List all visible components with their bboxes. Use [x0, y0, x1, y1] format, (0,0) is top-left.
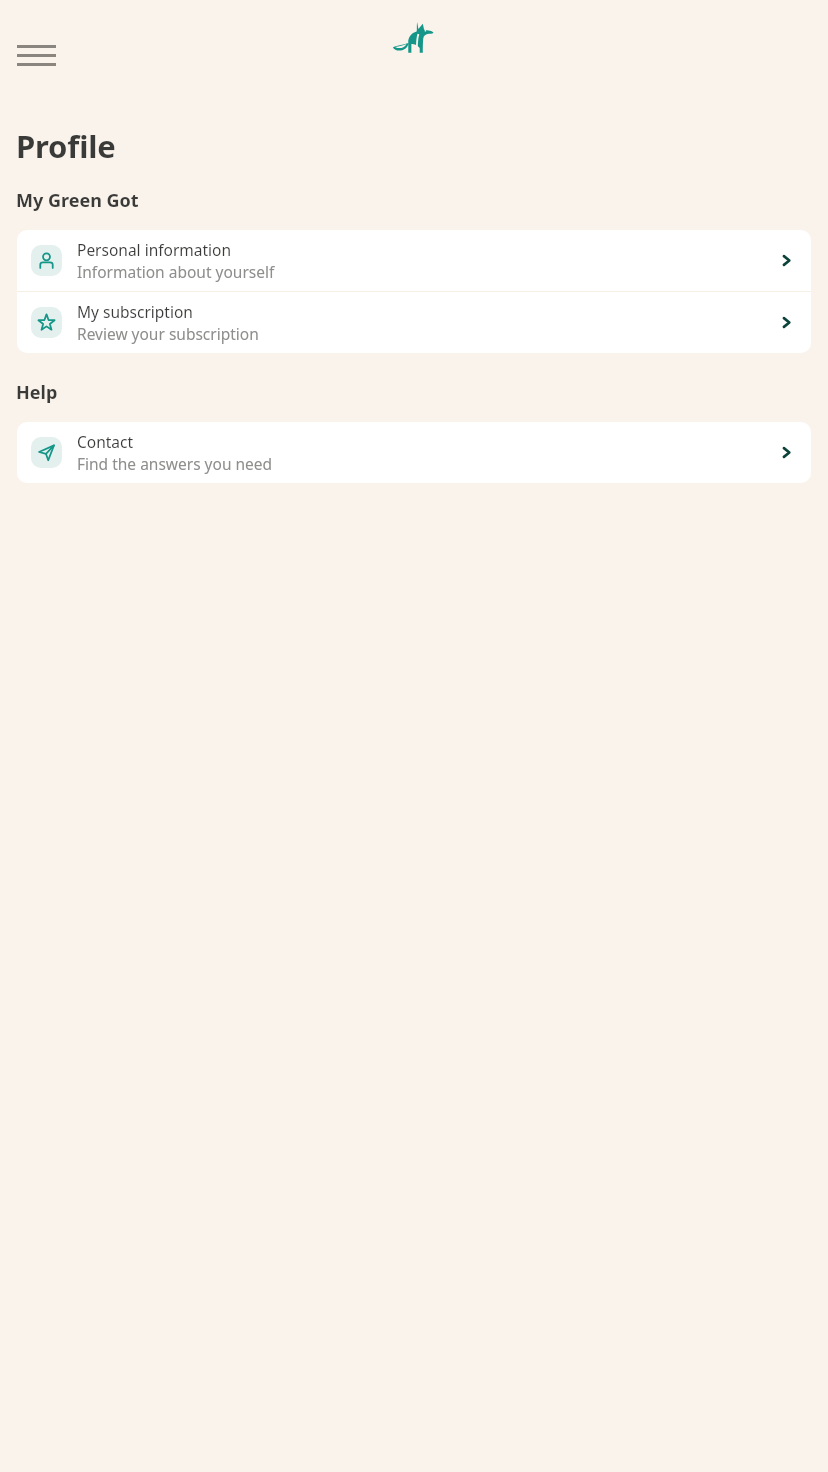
button[interactable]: Personal information	[17, 230, 811, 291]
button[interactable]: Contact	[17, 422, 811, 483]
staticText: Review your subscription	[77, 323, 259, 344]
staticText: My subscription	[77, 301, 193, 322]
staticText: Find the answers you need	[77, 453, 273, 474]
staticText: Help	[16, 380, 58, 405]
staticText: Information about yourself	[77, 261, 275, 282]
staticText: Profile	[16, 125, 116, 167]
button[interactable]: Menu	[17, 43, 56, 70]
button[interactable]: My subscription	[17, 292, 811, 353]
staticText: My Green Got	[16, 188, 139, 213]
staticText: Personal information	[77, 239, 232, 260]
staticText: Contact	[77, 431, 134, 452]
